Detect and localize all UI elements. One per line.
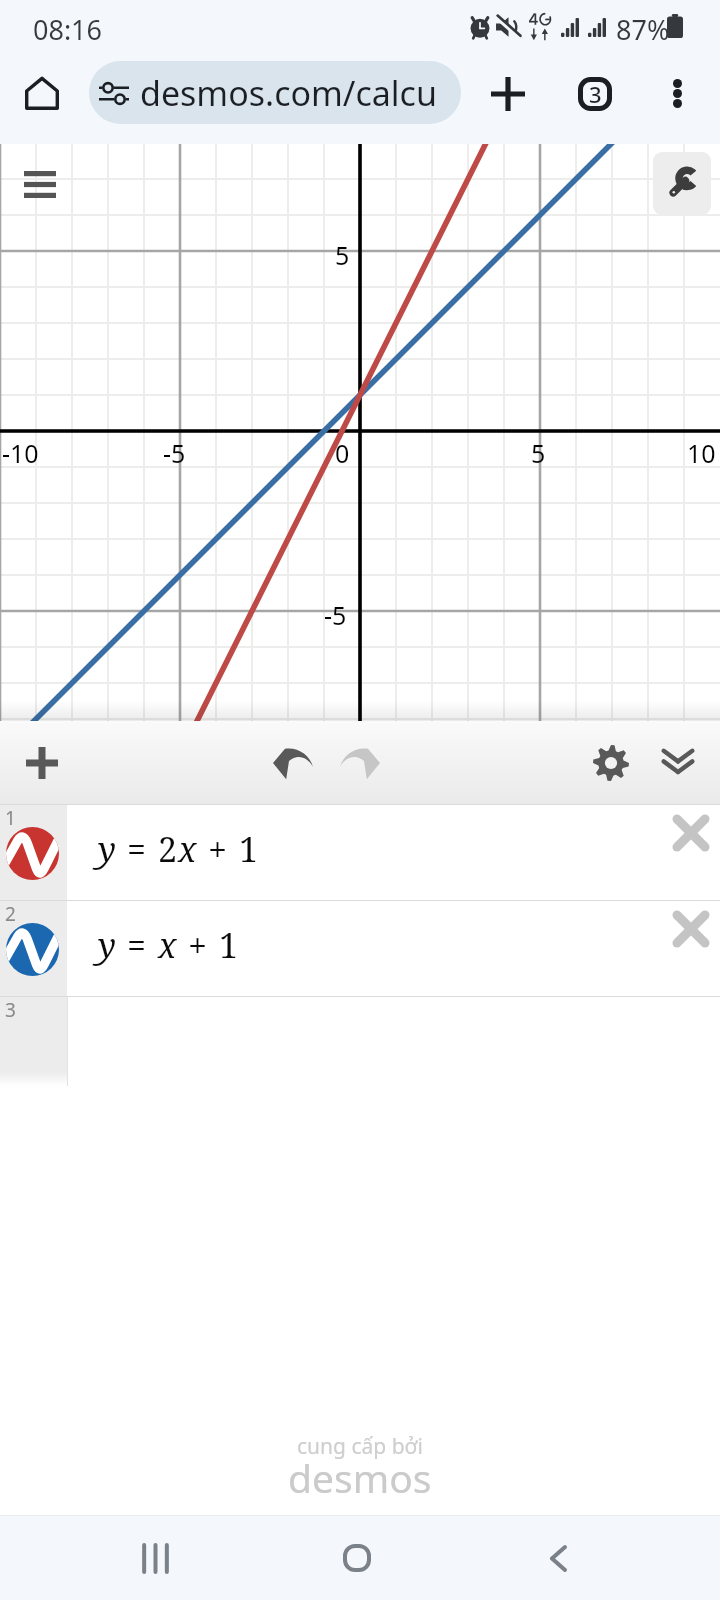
staticText: -5 [163, 436, 186, 470]
button[interactable]: Graph settings [653, 152, 711, 215]
staticText: 08:16 [33, 11, 103, 48]
staticText: x [178, 826, 197, 872]
staticText: + [208, 826, 228, 872]
button[interactable]: New tab [476, 62, 539, 125]
button[interactable]: 1 [0, 804, 720, 900]
staticText: y [98, 922, 116, 968]
staticText: 3 [589, 79, 602, 109]
staticText: 1 [219, 922, 239, 968]
staticText: cung cấp bởi [297, 1432, 423, 1461]
staticText: = [127, 922, 147, 968]
staticText: 2 [158, 826, 178, 872]
button[interactable]: Settings [583, 735, 639, 791]
staticText: x [158, 922, 177, 968]
button[interactable]: Tabs [563, 62, 626, 125]
staticText: 1 [5, 805, 16, 831]
button[interactable]: Menu [12, 156, 68, 212]
staticText: 5 [335, 238, 350, 272]
button[interactable]: Redo [332, 735, 388, 791]
button[interactable]: More options [646, 62, 709, 125]
staticText: 87% [616, 11, 670, 48]
staticText: desmos [288, 1451, 432, 1504]
staticText: y [98, 826, 116, 872]
button[interactable]: 2 [0, 900, 720, 996]
staticText: 0 [335, 436, 350, 470]
staticText: + [188, 922, 208, 968]
staticText: 2 [5, 901, 16, 927]
staticText: 5 [531, 436, 546, 470]
staticText: -5 [324, 598, 347, 632]
staticText: -10 [2, 436, 39, 470]
button[interactable]: Home [10, 61, 74, 125]
staticText: 3 [5, 997, 16, 1023]
button[interactable]: Home [322, 1523, 392, 1593]
button[interactable]: Recent apps [120, 1523, 190, 1593]
button[interactable]: desmos.com/calcu [89, 61, 461, 124]
staticText: 1 [239, 826, 259, 872]
button[interactable]: Delete expression [661, 899, 720, 959]
button[interactable]: Back [523, 1523, 593, 1593]
button[interactable]: Collapse panel [650, 735, 706, 791]
staticText: = [127, 826, 147, 872]
button[interactable]: Undo [265, 735, 321, 791]
staticText: 10 [687, 436, 716, 470]
staticText: desmos.com/calcu [140, 70, 437, 116]
button[interactable]: Add expression [14, 735, 70, 791]
button[interactable]: Delete expression [661, 803, 720, 863]
